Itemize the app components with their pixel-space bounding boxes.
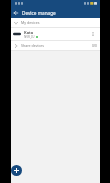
button[interactable]: My devices <box>11 18 100 27</box>
staticText: Kata <box>24 30 34 35</box>
button[interactable] <box>11 165 22 176</box>
staticText: NVR_IU <box>24 35 35 39</box>
staticText: Device manage <box>22 10 56 16</box>
button[interactable]: Kata <box>11 28 100 40</box>
button[interactable]: Device manage <box>11 7 100 18</box>
staticText: Share devices <box>21 43 44 48</box>
staticText: My devices <box>21 20 40 25</box>
button[interactable]: Share devices <box>11 41 100 50</box>
staticText: 0/0 <box>92 44 97 48</box>
